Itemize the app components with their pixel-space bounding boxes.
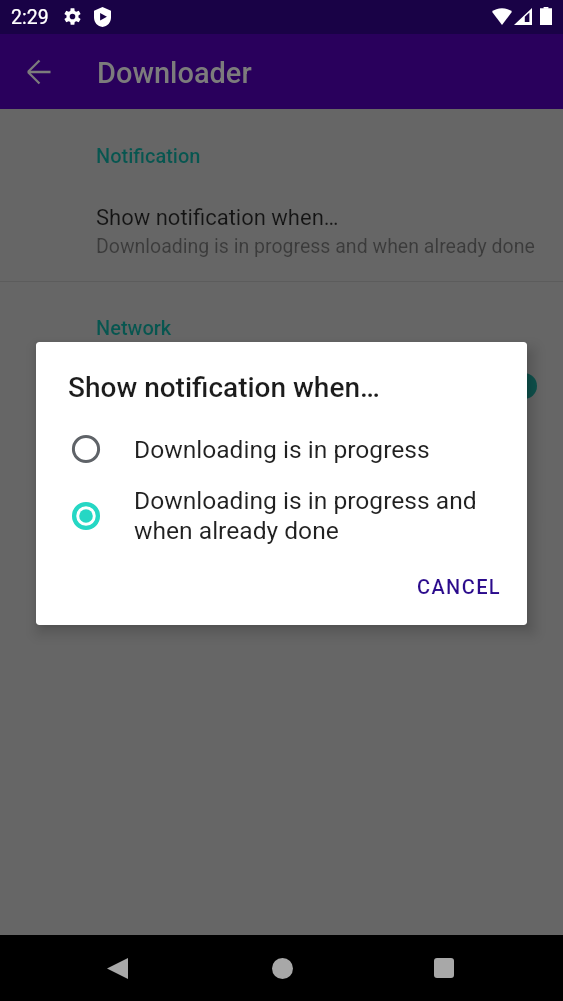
- staticText: Downloader: [97, 56, 252, 90]
- button[interactable]: Toggle: [511, 373, 537, 399]
- button[interactable]: Downloading is in progress: [36, 425, 527, 473]
- button[interactable]: Home: [262, 948, 302, 988]
- staticText: Network: [96, 316, 172, 339]
- button[interactable]: Back: [15, 48, 62, 95]
- button[interactable]: Back: [97, 948, 137, 988]
- button[interactable]: Recents: [424, 948, 464, 988]
- staticText: Notification: [96, 144, 201, 167]
- button[interactable]: Downloading is in progress and when alre…: [36, 473, 527, 551]
- staticText: Show notification when…: [96, 205, 339, 231]
- staticText: Show notification when…: [68, 371, 380, 404]
- staticText: Downloading is in progress and when alre…: [96, 235, 535, 258]
- button[interactable]: CANCEL: [409, 569, 510, 604]
- staticText: Downloading is in progress and when alre…: [134, 486, 477, 545]
- staticText: CANCEL: [417, 575, 502, 598]
- staticText: Downloading is in progress: [134, 435, 430, 464]
- button[interactable]: Show notification when…: [0, 199, 563, 264]
- staticText: 2:29: [11, 6, 49, 29]
